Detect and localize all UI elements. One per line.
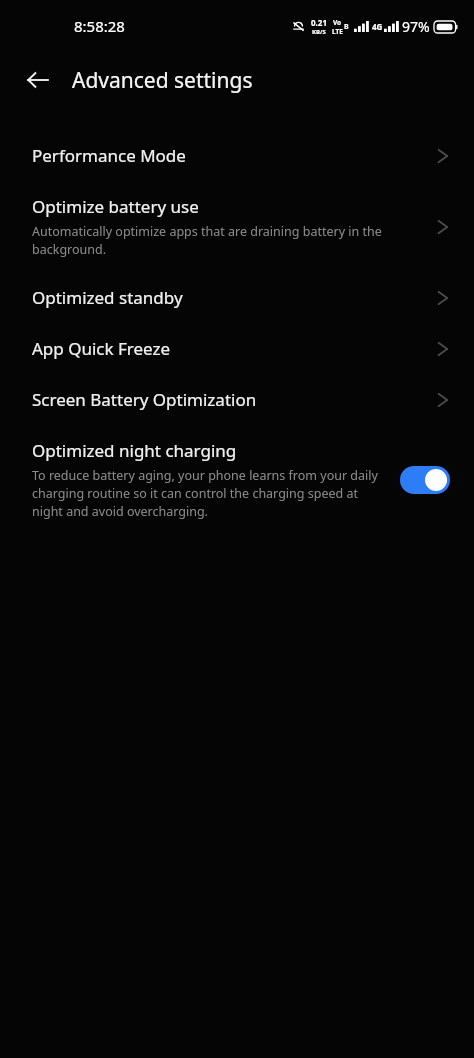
staticText: Optimize battery use bbox=[32, 195, 199, 218]
staticText: 4G bbox=[372, 21, 383, 32]
button[interactable]: Performance Mode bbox=[0, 130, 474, 181]
staticText: Screen Battery Optimization bbox=[32, 388, 257, 411]
staticText: App Quick Freeze bbox=[32, 337, 171, 360]
staticText: Optimized standby bbox=[32, 286, 183, 309]
staticText: Performance Mode bbox=[32, 144, 186, 167]
button[interactable]: Optimize battery use bbox=[0, 181, 474, 272]
button[interactable]: Optimized night charging bbox=[0, 425, 474, 534]
staticText: Vo bbox=[333, 18, 342, 27]
staticText: KB/S bbox=[312, 28, 326, 36]
button[interactable]: Back bbox=[16, 58, 60, 102]
staticText: To reduce battery aging, your phone lear… bbox=[32, 467, 382, 520]
button[interactable]: Screen Battery Optimization bbox=[0, 374, 474, 425]
staticText: 97% bbox=[402, 17, 430, 36]
staticText: B bbox=[344, 22, 349, 32]
button[interactable]: App Quick Freeze bbox=[0, 323, 474, 374]
staticText: Advanced settings bbox=[72, 66, 253, 95]
staticText: LTE bbox=[332, 27, 343, 36]
button[interactable]: Optimized standby bbox=[0, 272, 474, 323]
button[interactable]: Optimized night charging toggle bbox=[400, 466, 450, 494]
staticText: Automatically optimize apps that are dra… bbox=[32, 223, 418, 258]
staticText: Optimized night charging bbox=[32, 439, 237, 462]
staticText: 0.21 bbox=[311, 17, 327, 28]
staticText: 8:58:28 bbox=[74, 16, 125, 36]
